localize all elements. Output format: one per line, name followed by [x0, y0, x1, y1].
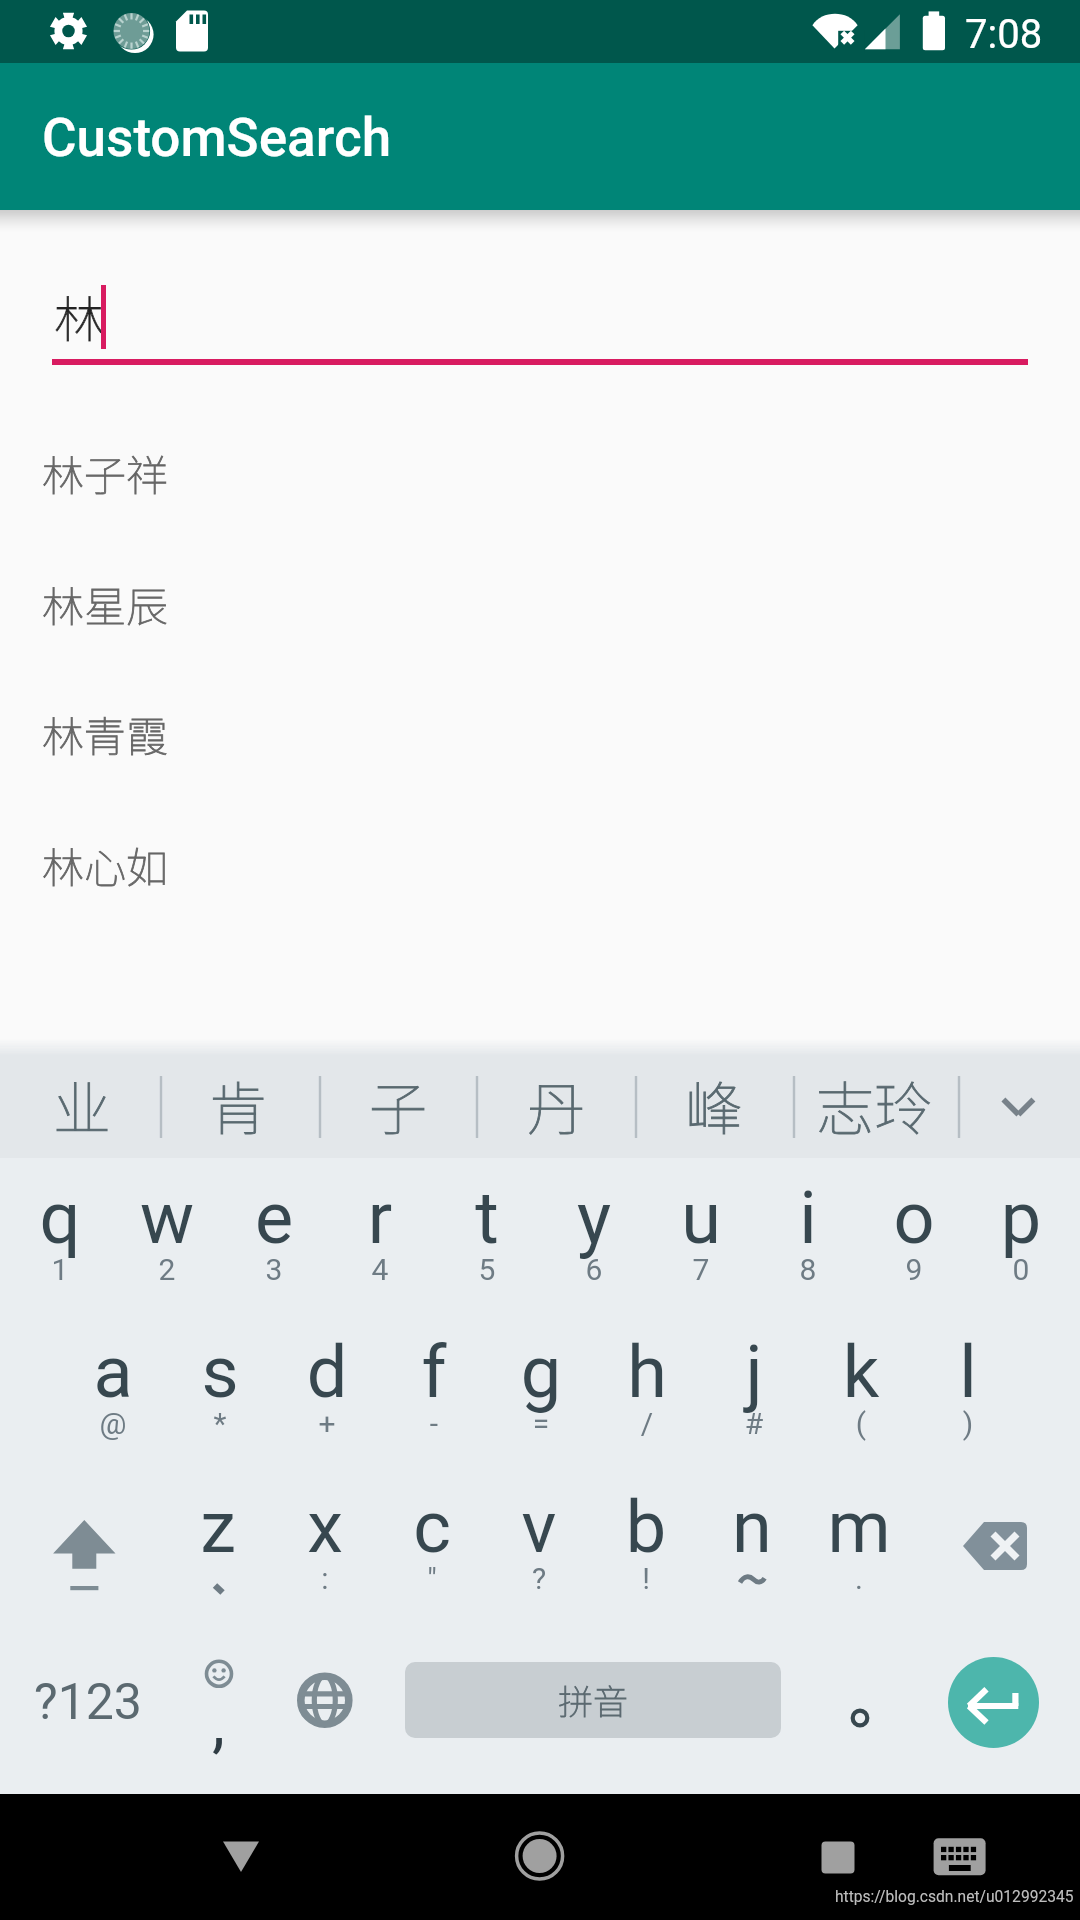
staticText: 业: [53, 1063, 112, 1147]
staticText: 业: [53, 1063, 112, 1147]
staticText: w: [113, 1176, 221, 1260]
button[interactable]: v: [485, 1465, 593, 1619]
staticText: =: [487, 1406, 595, 1441]
button[interactable]: 肯: [159, 1055, 317, 1158]
staticText: i: [754, 1176, 862, 1260]
staticText: 2: [113, 1252, 221, 1287]
button[interactable]: i: [754, 1156, 862, 1310]
button[interactable]: n: [698, 1465, 806, 1619]
button[interactable]: 丹: [477, 1055, 635, 1158]
staticText: +: [273, 1406, 381, 1441]
staticText: x: [271, 1485, 379, 1569]
button[interactable]: 拼音: [405, 1662, 781, 1738]
button[interactable]: Back: [181, 1794, 301, 1920]
staticText: 林心如: [42, 834, 169, 895]
staticText: 林: [54, 280, 104, 352]
button[interactable]: r: [326, 1156, 434, 1310]
button[interactable]: Recents: [778, 1794, 898, 1920]
staticText: ,: [212, 1684, 225, 1761]
staticText: b: [592, 1485, 700, 1569]
button[interactable]: j: [700, 1310, 808, 1464]
staticText: 林星辰: [42, 573, 169, 634]
button[interactable]: 业: [3, 1055, 161, 1158]
button[interactable]: Enter: [948, 1657, 1039, 1748]
button[interactable]: g: [487, 1310, 595, 1464]
button[interactable]: Period: [810, 1620, 910, 1794]
button[interactable]: w: [113, 1156, 221, 1310]
staticText: .: [805, 1561, 913, 1596]
button[interactable]: Backspace: [925, 1465, 1075, 1619]
button[interactable]: 林心如: [0, 801, 1080, 931]
button[interactable]: q: [6, 1156, 114, 1310]
button[interactable]: 志玲: [795, 1055, 953, 1158]
button[interactable]: k: [807, 1310, 915, 1464]
button[interactable]: Switch language: [275, 1620, 375, 1794]
staticText: :: [271, 1561, 379, 1596]
button[interactable]: u: [647, 1156, 755, 1310]
staticText: 子: [369, 1063, 428, 1147]
staticText: 肯: [209, 1063, 268, 1147]
staticText: r: [326, 1176, 434, 1260]
staticText: l: [914, 1330, 1022, 1414]
staticText: @: [59, 1406, 167, 1441]
staticText: 9: [860, 1252, 968, 1287]
staticText: ): [914, 1406, 1022, 1441]
staticText: 志玲: [816, 1063, 933, 1147]
button[interactable]: More candidates: [975, 1055, 1060, 1158]
staticText: k: [807, 1330, 915, 1414]
staticText: n: [698, 1485, 806, 1569]
staticText: p: [967, 1176, 1075, 1260]
button[interactable]: 峰: [635, 1055, 793, 1158]
button[interactable]: b: [592, 1465, 700, 1619]
button[interactable]: 林星辰: [0, 540, 1080, 670]
staticText: https://blog.csdn.net/u012992345: [835, 1888, 1074, 1906]
button[interactable]: h: [593, 1310, 701, 1464]
staticText: 5: [433, 1252, 541, 1287]
staticText: y: [540, 1176, 648, 1260]
staticText: 7:08: [965, 11, 1043, 58]
button[interactable]: x: [271, 1465, 379, 1619]
button[interactable]: Keyboard: [900, 1794, 1020, 1920]
button[interactable]: 林子祥: [0, 409, 1080, 539]
button[interactable]: c: [378, 1465, 486, 1619]
staticText: j: [700, 1330, 808, 1414]
button[interactable]: t: [433, 1156, 541, 1310]
button[interactable]: a: [59, 1310, 167, 1464]
staticText: q: [6, 1176, 114, 1260]
staticText: 肯: [209, 1063, 268, 1147]
button[interactable]: p: [967, 1156, 1075, 1310]
staticText: /: [593, 1406, 701, 1441]
staticText: 0: [967, 1252, 1075, 1287]
button[interactable]: Home: [480, 1794, 600, 1920]
staticText: CustomSearch: [42, 107, 392, 169]
staticText: 子: [369, 1063, 428, 1147]
button[interactable]: ?123: [0, 1620, 170, 1794]
button[interactable]: f: [380, 1310, 488, 1464]
staticText: ?123: [34, 1673, 142, 1732]
staticText: 7: [647, 1252, 755, 1287]
staticText: ": [378, 1561, 486, 1596]
staticText: 林子祥: [42, 442, 169, 503]
button[interactable]: l: [914, 1310, 1022, 1464]
button[interactable]: e: [220, 1156, 328, 1310]
staticText: s: [166, 1330, 274, 1414]
button[interactable]: 林青霞: [0, 670, 1080, 800]
button[interactable]: 子: [319, 1055, 477, 1158]
staticText: t: [433, 1176, 541, 1260]
staticText: 丹: [527, 1063, 586, 1147]
button[interactable]: s: [166, 1310, 274, 1464]
staticText: v: [485, 1485, 593, 1569]
staticText: !: [592, 1561, 700, 1596]
button[interactable]: o: [860, 1156, 968, 1310]
staticText: 丹: [527, 1063, 586, 1147]
staticText: z: [164, 1485, 272, 1569]
button[interactable]: Shift: [10, 1465, 158, 1619]
button[interactable]: d: [273, 1310, 381, 1464]
staticText: f: [380, 1330, 488, 1414]
button[interactable]: y: [540, 1156, 648, 1310]
staticText: 林青霞: [42, 703, 169, 764]
staticText: *: [166, 1406, 274, 1441]
button[interactable]: Emoji: [170, 1620, 270, 1794]
button[interactable]: m: [805, 1465, 913, 1619]
button[interactable]: z: [164, 1465, 272, 1619]
